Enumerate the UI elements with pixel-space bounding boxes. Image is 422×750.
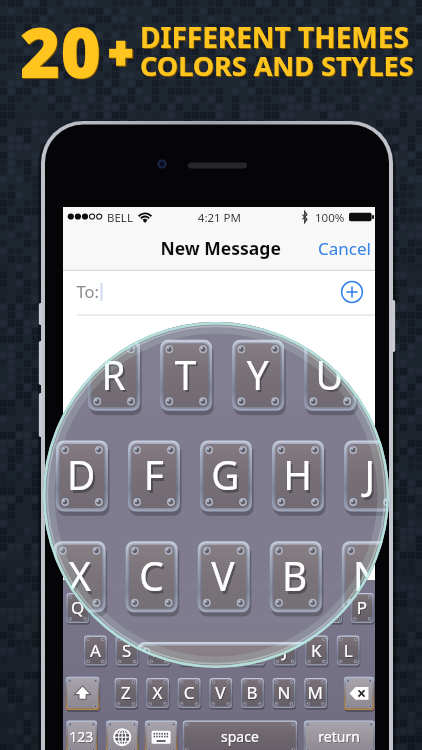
staticText: COLORS AND STYLES (140, 47, 414, 84)
staticText: 20 (21, 5, 102, 99)
staticText: 20 (20, 4, 101, 98)
staticText: COLORS AND STYLES (141, 48, 415, 85)
button[interactable]: Add contact (334, 274, 370, 310)
staticText: DIFFERENT THEMES (140, 18, 409, 56)
button[interactable] (314, 230, 362, 256)
staticText: DIFFERENT THEMES (141, 19, 410, 57)
